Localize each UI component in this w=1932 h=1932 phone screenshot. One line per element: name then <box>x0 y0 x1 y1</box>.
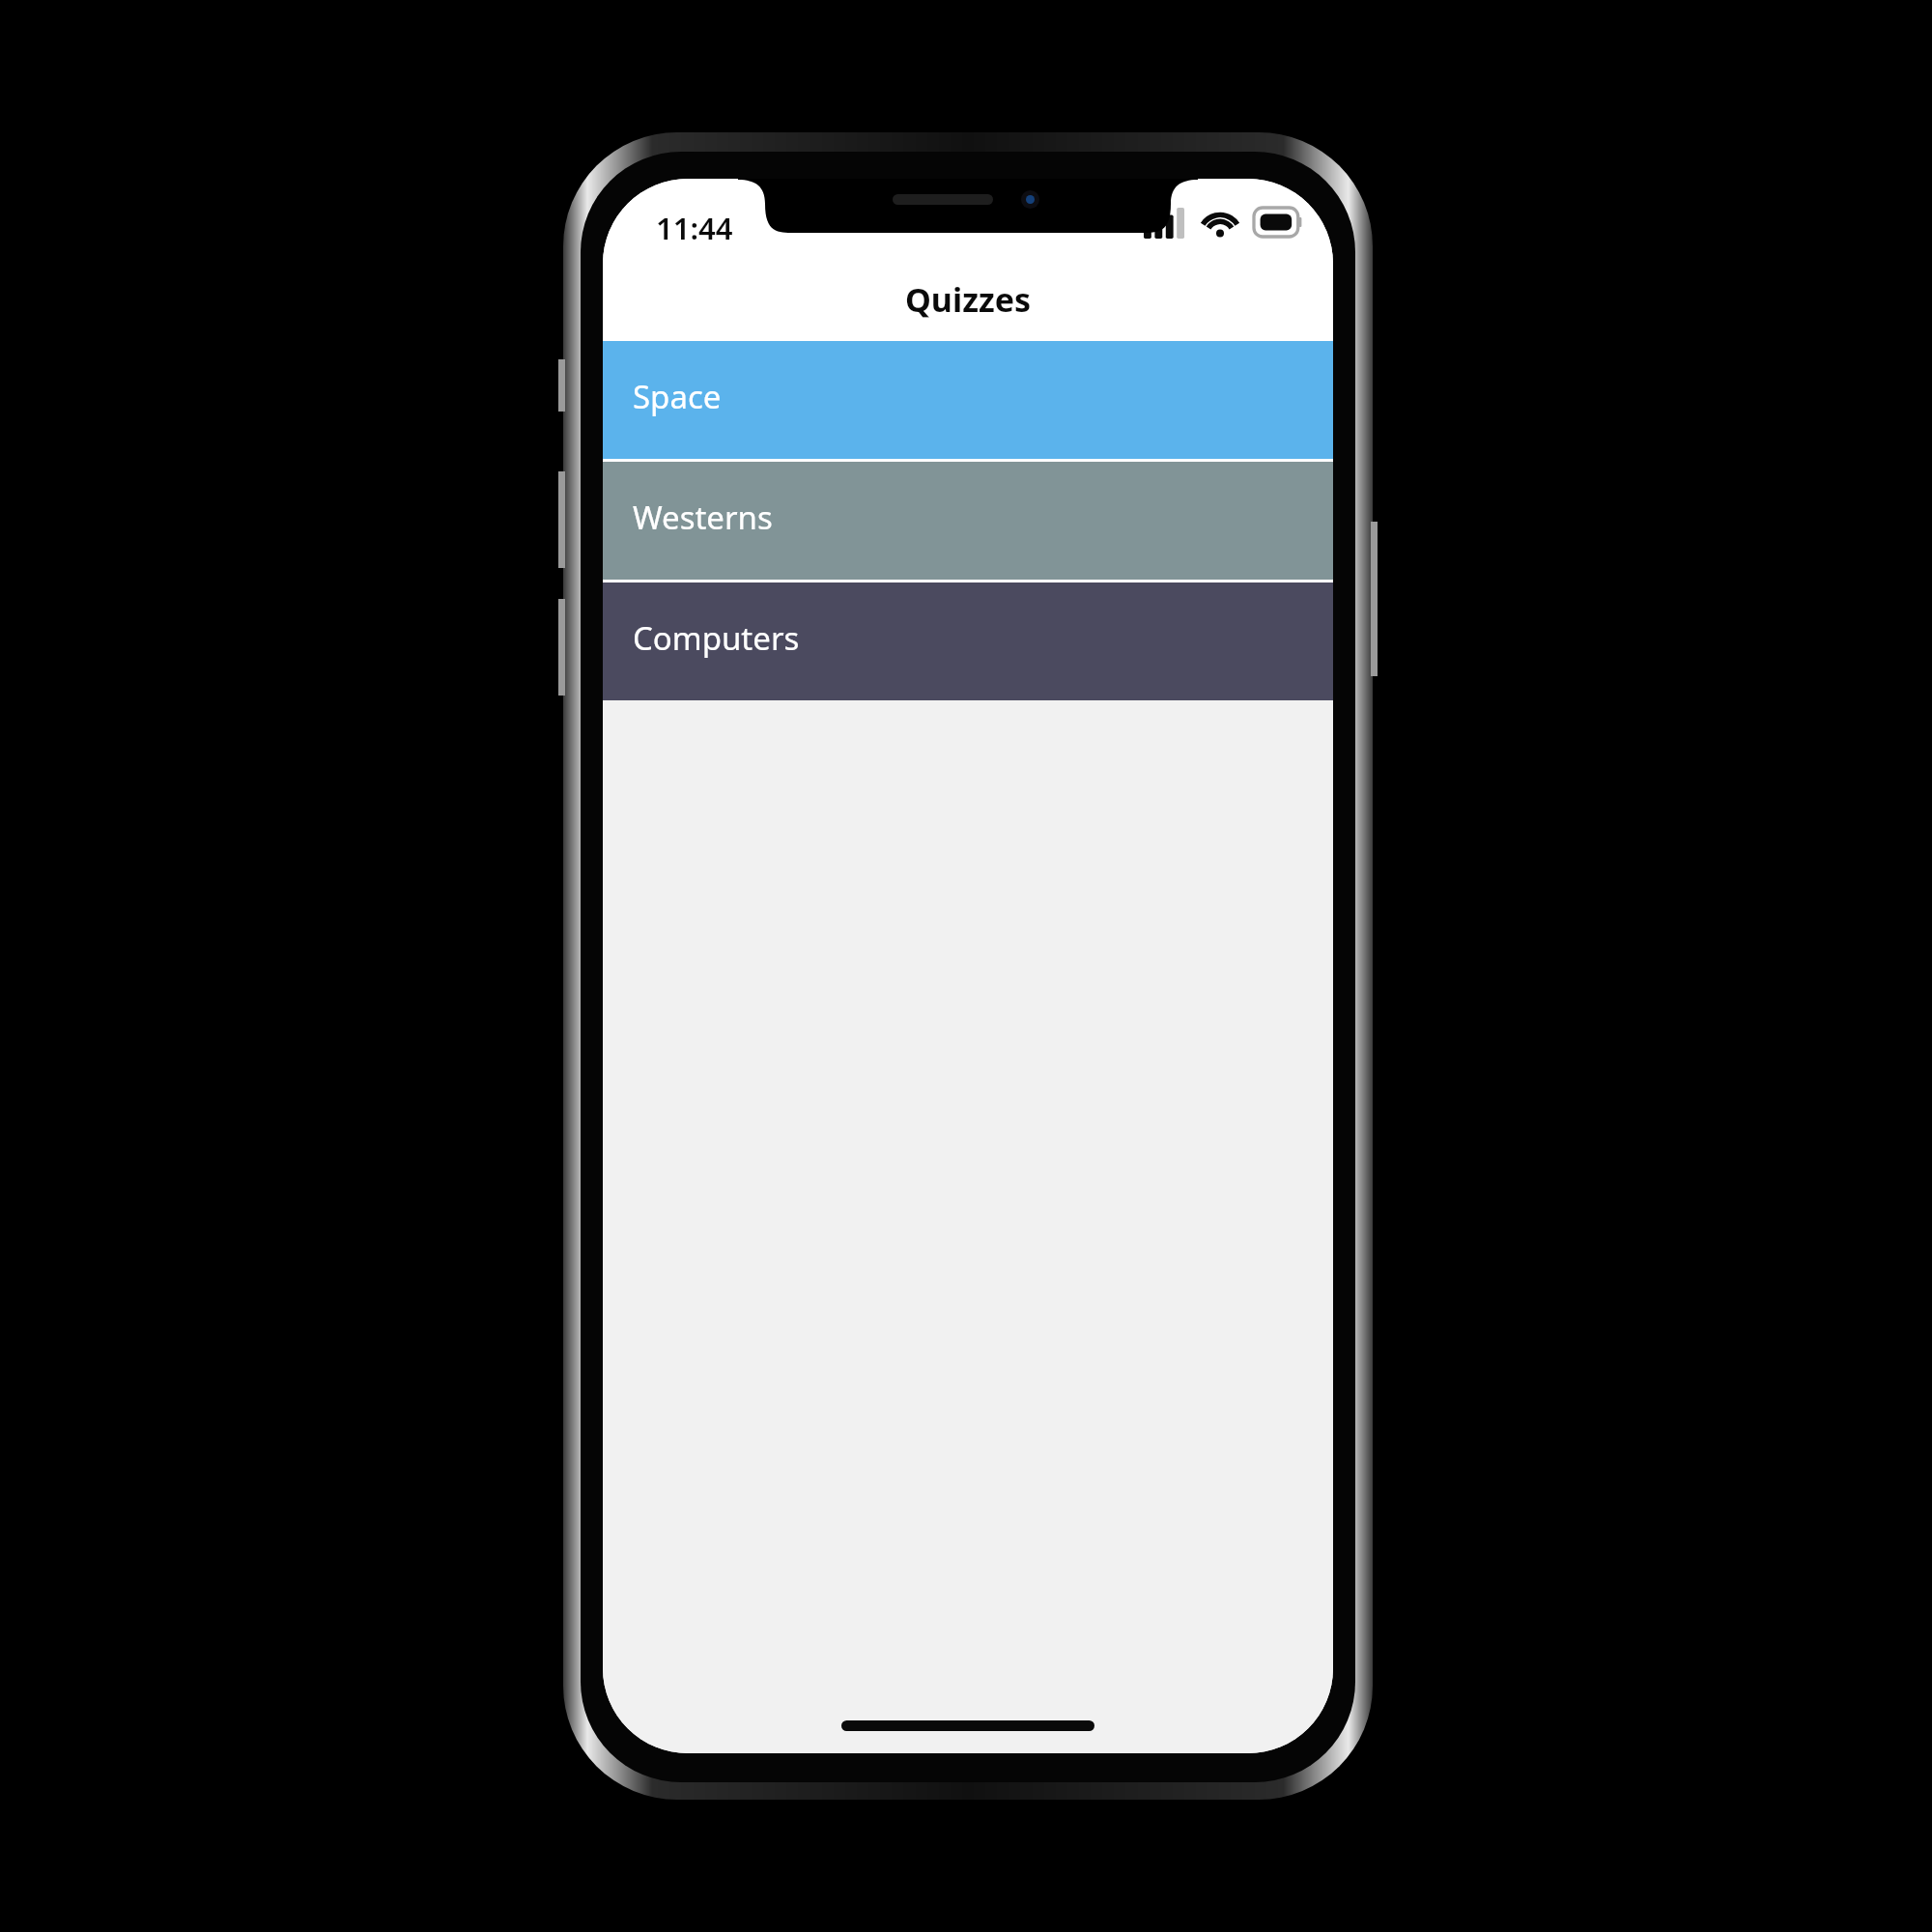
staticText: Computers <box>633 616 800 660</box>
button[interactable]: Westerns <box>603 462 1333 580</box>
staticText: Space <box>633 375 722 418</box>
button[interactable]: Computers <box>603 582 1333 700</box>
staticText: 11:44 <box>656 208 733 248</box>
button[interactable]: Space <box>603 341 1333 459</box>
staticText: Westerns <box>633 496 773 539</box>
staticText: Quizzes <box>603 277 1333 322</box>
